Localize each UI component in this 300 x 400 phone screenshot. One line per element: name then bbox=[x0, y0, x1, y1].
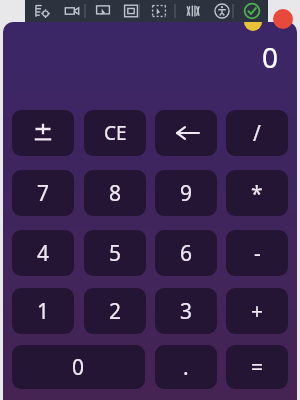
staticText: 5 bbox=[109, 239, 122, 268]
button[interactable]: 3 bbox=[155, 288, 217, 334]
staticText: = bbox=[251, 353, 264, 382]
button[interactable]: 1 bbox=[12, 288, 74, 334]
button[interactable]: * bbox=[226, 170, 288, 216]
button[interactable]: . bbox=[155, 345, 217, 389]
button[interactable]: - bbox=[226, 230, 288, 276]
staticText: 0 bbox=[72, 353, 85, 382]
staticText: . bbox=[183, 353, 189, 382]
button[interactable]: Waveform bbox=[182, 2, 204, 20]
staticText: 3 bbox=[180, 297, 193, 326]
button[interactable]: Region select bbox=[148, 2, 170, 20]
button[interactable]: 8 bbox=[84, 170, 146, 216]
button[interactable]: 9 bbox=[155, 170, 217, 216]
button[interactable]: Accessibility bbox=[211, 2, 233, 20]
button[interactable]: 4 bbox=[12, 230, 74, 276]
button[interactable]: Record video bbox=[61, 2, 83, 20]
button[interactable]: CE bbox=[84, 110, 146, 156]
staticText: / bbox=[253, 119, 261, 148]
staticText: 0 bbox=[261, 38, 278, 76]
staticText: * bbox=[251, 179, 263, 208]
button[interactable]: 0 bbox=[12, 345, 145, 389]
button[interactable]: Cursor bbox=[92, 2, 114, 20]
button[interactable]: Backspace bbox=[155, 110, 217, 156]
staticText: + bbox=[251, 297, 264, 326]
button[interactable]: 2 bbox=[84, 288, 146, 334]
button[interactable]: Frame bbox=[120, 2, 142, 20]
staticText: 4 bbox=[37, 239, 50, 268]
button[interactable]: 5 bbox=[84, 230, 146, 276]
staticText: - bbox=[254, 239, 261, 268]
button[interactable]: + bbox=[226, 288, 288, 334]
staticText: 6 bbox=[180, 239, 193, 268]
staticText: 7 bbox=[37, 179, 50, 208]
staticText: 2 bbox=[109, 297, 122, 326]
button[interactable]: 6 bbox=[155, 230, 217, 276]
staticText: 8 bbox=[109, 179, 122, 208]
staticText: 1 bbox=[37, 297, 50, 326]
button[interactable]: Plus minus bbox=[12, 110, 74, 156]
button[interactable]: 7 bbox=[12, 170, 74, 216]
staticText: CE bbox=[104, 120, 127, 146]
button[interactable]: / bbox=[226, 110, 288, 156]
button[interactable]: Verified bbox=[241, 2, 263, 20]
button[interactable]: Layout inspector bbox=[31, 2, 53, 20]
staticText: 9 bbox=[180, 179, 193, 208]
button[interactable]: = bbox=[226, 345, 288, 389]
